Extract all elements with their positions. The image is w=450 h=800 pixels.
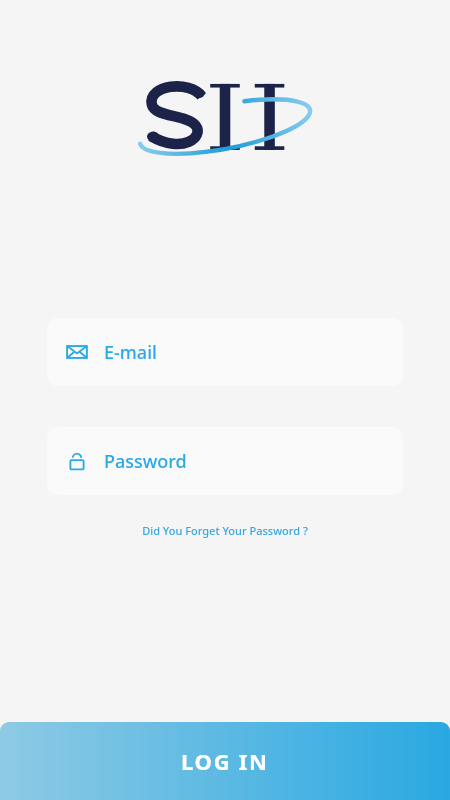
button[interactable]: Did You Forget Your Password ? <box>132 519 318 542</box>
button[interactable]: Password <box>47 427 403 495</box>
button[interactable]: LOG IN <box>0 722 450 800</box>
button[interactable]: E-mail <box>47 318 403 386</box>
other: SII logo <box>144 76 306 164</box>
staticText: E-mail <box>104 340 157 365</box>
staticText: Did You Forget Your Password ? <box>142 523 308 538</box>
staticText: LOG IN <box>181 746 269 776</box>
staticText: Password <box>104 449 187 474</box>
